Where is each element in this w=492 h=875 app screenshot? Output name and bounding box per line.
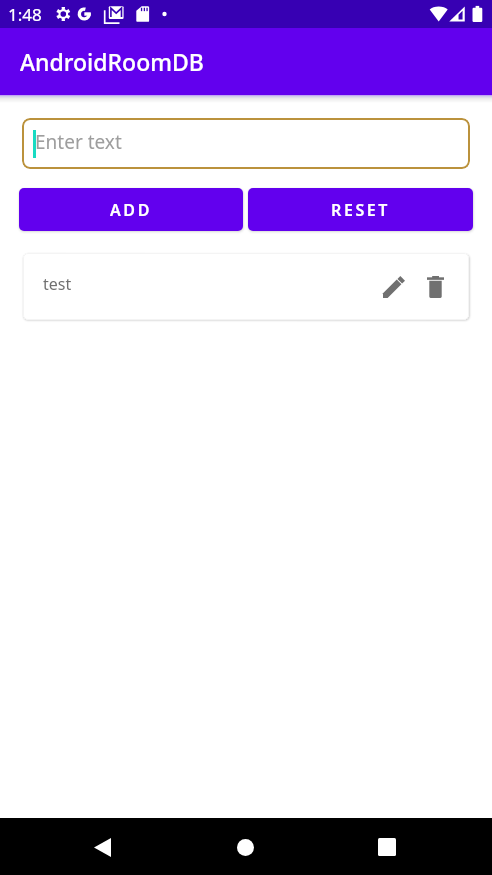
staticText: Enter text [35, 129, 122, 155]
staticText: ADD [110, 199, 152, 221]
staticText: 1:48 [8, 3, 42, 26]
button[interactable]: Home [221, 823, 269, 871]
button[interactable]: Edit [381, 274, 407, 300]
button[interactable]: Enter text [22, 118, 470, 169]
button[interactable]: Delete [422, 274, 448, 300]
button[interactable]: Recents [363, 823, 411, 871]
button[interactable]: test [23, 253, 469, 320]
staticText: RESET [331, 199, 391, 221]
button[interactable]: ADD [19, 188, 243, 231]
staticText: test [43, 273, 72, 295]
staticText: AndroidRoomDB [20, 46, 204, 77]
button[interactable]: Back [78, 823, 126, 871]
button[interactable]: RESET [248, 188, 473, 231]
